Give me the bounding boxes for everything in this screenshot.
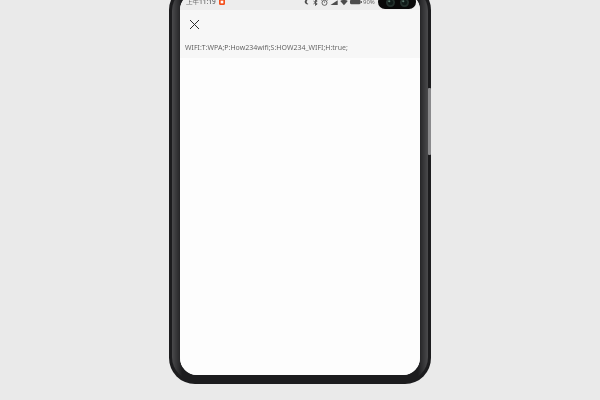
staticText: 上午11:19 bbox=[186, 0, 216, 6]
button[interactable]: Close bbox=[184, 14, 204, 34]
staticText: 90% bbox=[363, 0, 375, 6]
staticText: WIFI:T:WPA;P:How234wifi;S:HOW234_WIFI;H:… bbox=[185, 43, 348, 53]
